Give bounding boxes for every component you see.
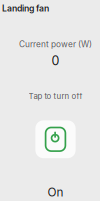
- staticText: Current power (W): [19, 39, 92, 49]
- staticText: Landing fan: [2, 3, 49, 13]
- staticText: Tap to turn off: [28, 91, 82, 101]
- staticText: 0: [51, 53, 59, 68]
- staticText: On: [47, 185, 63, 199]
- button[interactable]: Turn off Landing fan: [35, 120, 76, 158]
